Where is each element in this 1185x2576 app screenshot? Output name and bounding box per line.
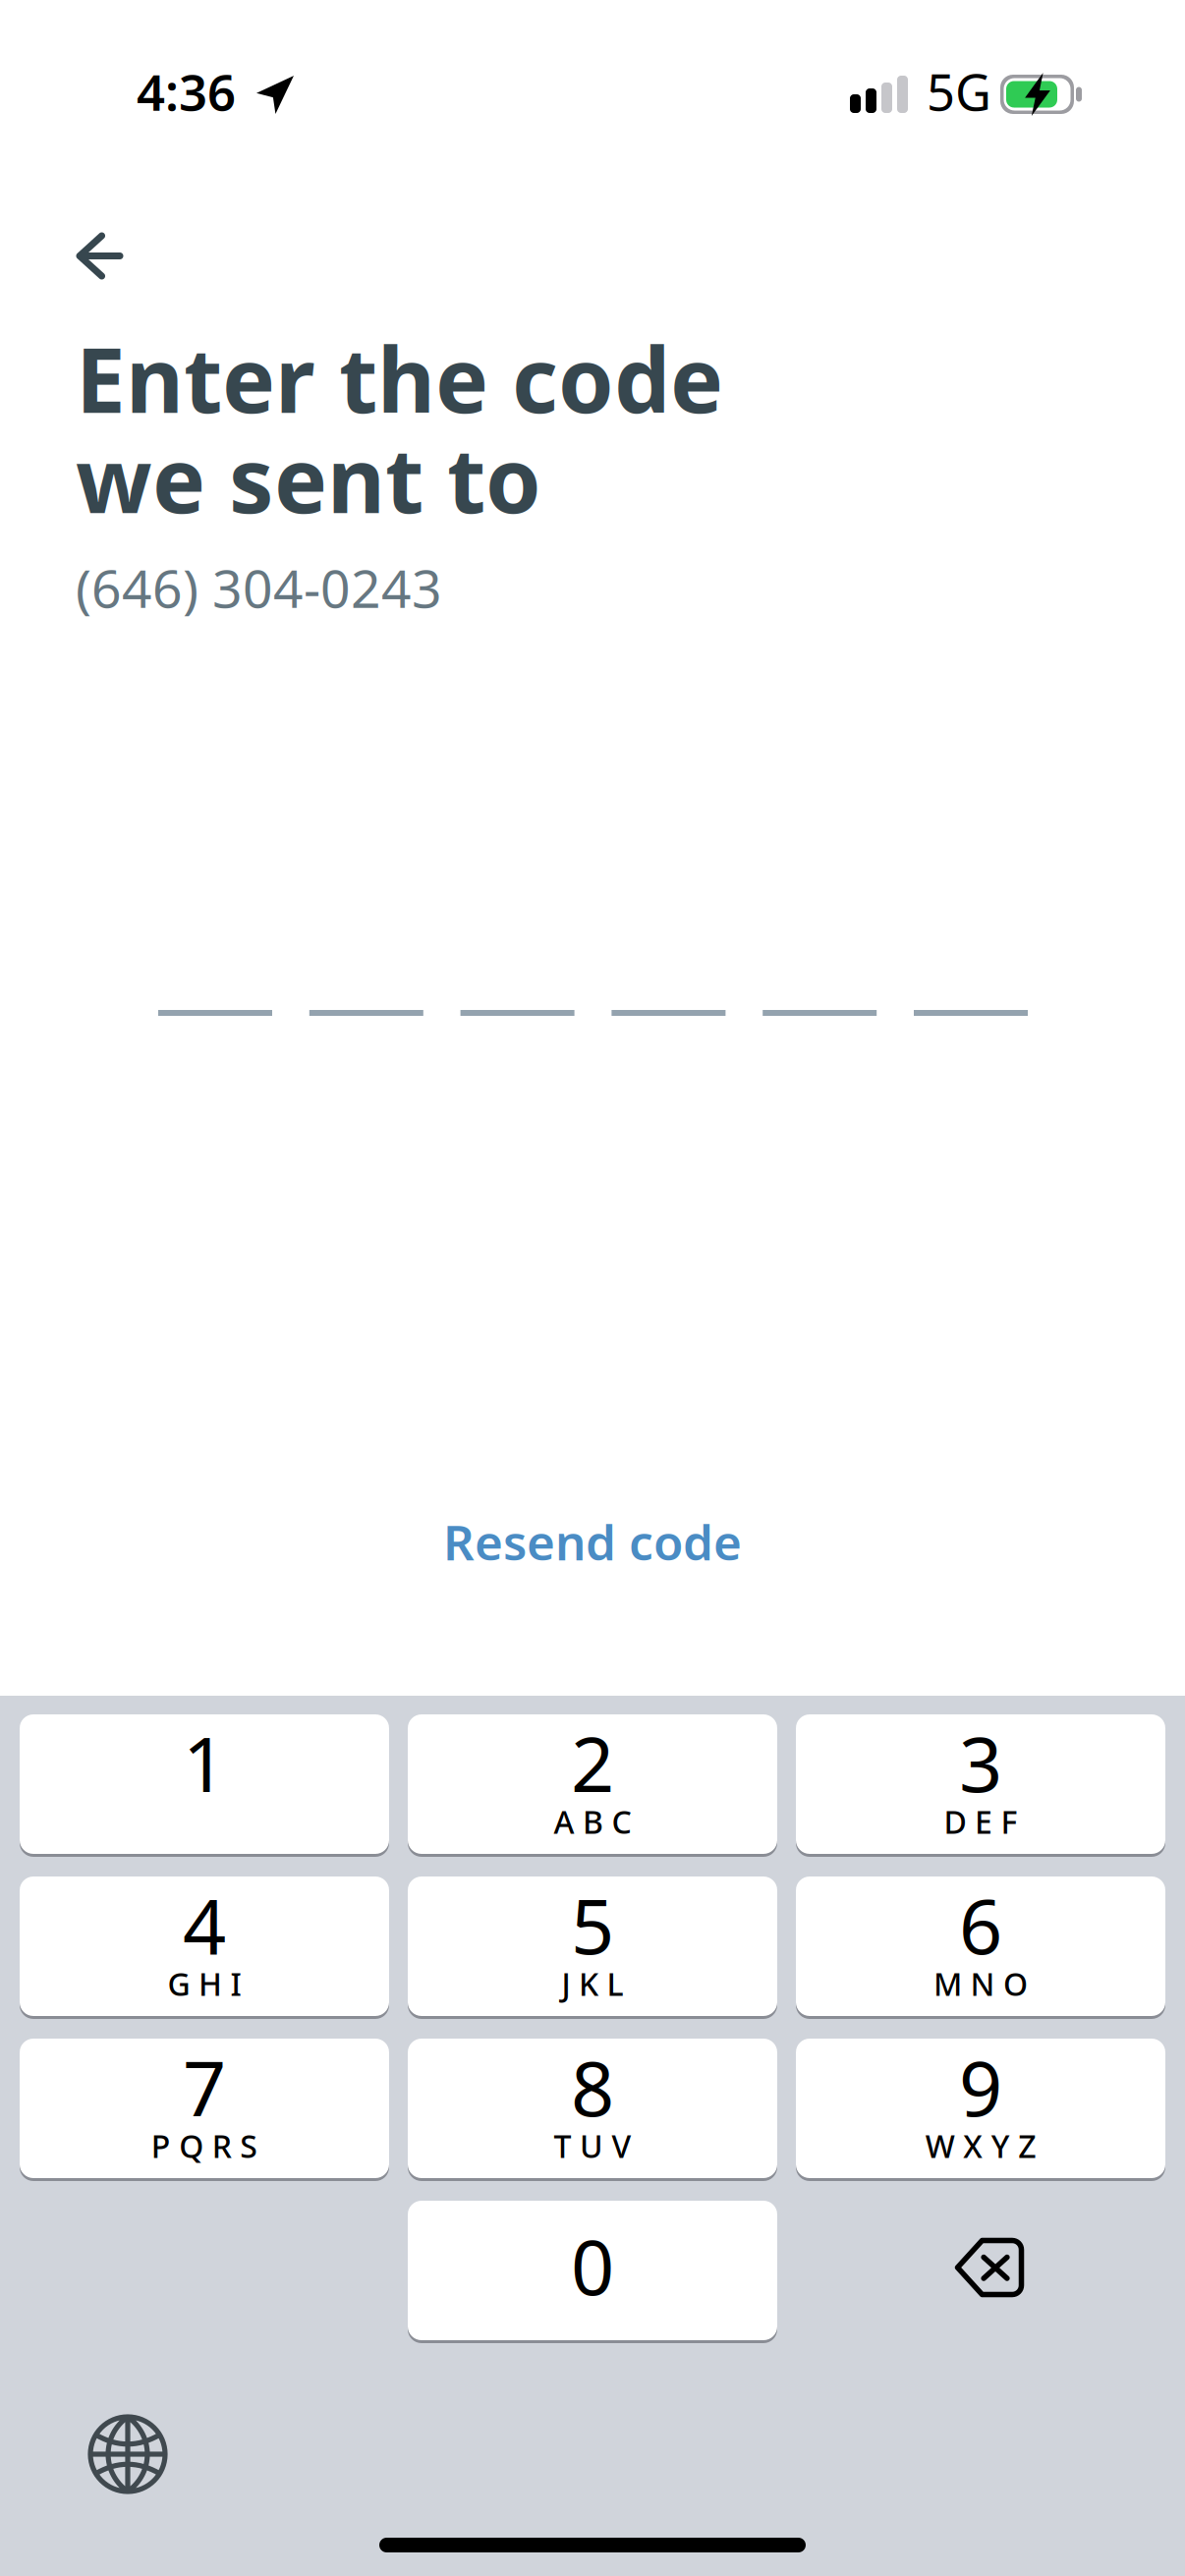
button[interactable]: 9	[796, 2039, 1165, 2178]
staticText: 4:36	[137, 58, 236, 124]
staticText: (646) 304-0243	[76, 553, 442, 622]
staticText: 5G	[927, 58, 991, 124]
button[interactable]: 2	[408, 1714, 777, 1854]
staticText: 0	[571, 2215, 614, 2316]
staticText: 1	[183, 1712, 226, 1813]
staticText: JKL	[562, 1963, 623, 2005]
staticText: MNO	[933, 1963, 1028, 2005]
button[interactable]: Delete	[796, 2201, 1165, 2340]
staticText: Enter the code	[76, 319, 723, 437]
button[interactable]: 4	[20, 1876, 389, 2016]
staticText: 9	[959, 2036, 1002, 2137]
button[interactable]: 8	[408, 2039, 777, 2178]
button[interactable]: 7	[20, 2039, 389, 2178]
button[interactable]: 1	[20, 1714, 389, 1854]
button[interactable]: 3	[796, 1714, 1165, 1854]
staticText: 6	[959, 1874, 1002, 1975]
staticText: ABC	[554, 1801, 631, 1842]
button[interactable]: 5	[408, 1876, 777, 2016]
staticText: Resend code	[443, 1509, 742, 1574]
staticText: DEF	[944, 1801, 1017, 1842]
staticText: PQRS	[151, 2125, 258, 2167]
staticText: 4	[183, 1874, 226, 1975]
staticText: 8	[571, 2036, 614, 2137]
button[interactable]: 6	[796, 1876, 1165, 2016]
button[interactable]: Back	[0, 219, 236, 293]
staticText: we sent to	[76, 419, 541, 538]
staticText: 3	[959, 1712, 1002, 1813]
staticText: 7	[183, 2036, 226, 2137]
button[interactable]: 0	[408, 2201, 777, 2340]
staticText: TUV	[554, 2125, 631, 2167]
staticText: GHI	[168, 1963, 241, 2005]
staticText: WXYZ	[925, 2125, 1036, 2167]
staticText: 5	[571, 1874, 614, 1975]
staticText: 2	[571, 1712, 614, 1813]
button[interactable]: Resend code	[404, 1503, 781, 1580]
button[interactable]: Next keyboard	[0, 2358, 195, 2492]
